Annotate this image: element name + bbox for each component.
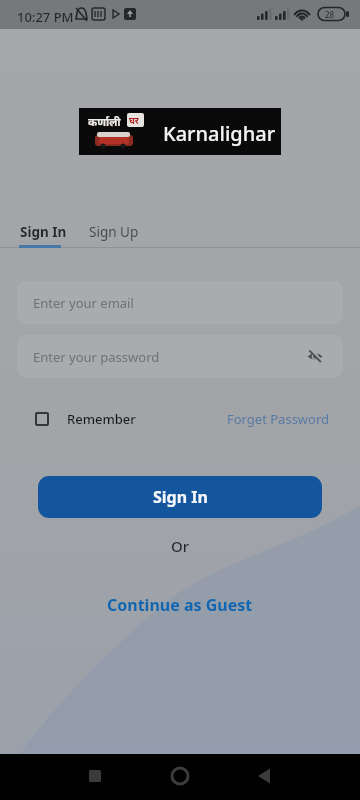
button[interactable]: Sign In [38,476,322,518]
button[interactable]: Forget Password [227,410,330,428]
button[interactable]: Sign Up [89,223,139,241]
staticText: Karnalighar [163,120,276,147]
button[interactable]: Sign In [20,223,67,241]
button[interactable] [120,754,240,800]
staticText: Or [171,536,190,556]
staticText: Sign In [20,223,67,241]
staticText: Forget Password [227,410,330,428]
button[interactable]: Enter your email [17,281,343,324]
staticText: Sign Up [89,223,139,241]
button[interactable]: Continue as Guest [107,594,253,616]
staticText: Sign In [153,486,208,508]
staticText: 28 [325,9,335,20]
button[interactable]: Enter your password [17,335,343,378]
button[interactable] [240,754,360,800]
staticText: Enter your password [33,348,160,366]
staticText: Continue as Guest [107,594,253,616]
staticText: कर्णाली [88,114,121,129]
staticText: Remember [67,410,136,428]
button[interactable] [0,754,120,800]
staticText: घर [129,114,139,126]
button[interactable]: Remember [35,410,136,428]
staticText: Enter your email [33,294,134,312]
staticText: 10:27 PM [17,8,74,26]
